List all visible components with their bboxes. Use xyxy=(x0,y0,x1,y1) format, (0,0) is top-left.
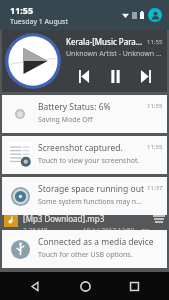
staticText: Screenshot captured. xyxy=(38,142,123,154)
button[interactable]: Battery Status: 6% xyxy=(2,95,167,133)
staticText: Some system functions may not work xyxy=(38,197,144,207)
staticText: Touch to view your screenshot. xyxy=(38,156,140,166)
button[interactable]: Next xyxy=(133,64,157,88)
button[interactable]: Pause xyxy=(103,64,127,88)
staticText: 11:55 xyxy=(147,38,163,46)
button[interactable]: Home xyxy=(70,272,100,300)
staticText: Unknown Artist - Unknown Alb.. xyxy=(66,49,163,59)
button[interactable]: Back xyxy=(20,272,50,300)
staticText: Tuesday 1 August xyxy=(10,17,68,27)
button[interactable]: Storage space running out xyxy=(2,177,167,215)
staticText: 3.36 MB xyxy=(23,226,48,235)
staticText: 11:37 xyxy=(147,184,163,192)
staticText: [Mp3 Download].mp3 xyxy=(23,213,105,224)
staticText: Touch for other USB options. xyxy=(38,250,133,260)
staticText: Kerala-[Music Paradi.. xyxy=(66,36,143,47)
staticText: 10 Jul 2017 12:59 .. ne xyxy=(83,226,150,235)
button[interactable]: User profile xyxy=(148,8,162,22)
button[interactable]: Kerala-[Music Paradi.. xyxy=(2,30,167,92)
button[interactable]: Screenshot captured. xyxy=(2,136,167,174)
button[interactable]: Connected as a media device xyxy=(2,230,167,268)
staticText: 11:55 xyxy=(10,4,34,16)
staticText: Storage space running out xyxy=(38,183,144,195)
button[interactable]: Previous xyxy=(72,64,96,88)
staticText: 11:55 xyxy=(147,102,163,110)
button[interactable]: Recent apps xyxy=(119,272,149,300)
staticText: Saving Mode Off xyxy=(38,115,93,125)
button[interactable]: Billie Holiday Strange fruit-[Mp3 Downlo… xyxy=(4,243,165,264)
button[interactable]: [Mp3 Download].mp3 xyxy=(4,213,165,235)
staticText: 11:55 xyxy=(147,143,163,151)
staticText: Battery Status: 6% xyxy=(38,101,111,113)
staticText: Billie Holiday Strange fruit-[Mp3 Downlo… xyxy=(23,243,145,264)
staticText: Connected as a media device xyxy=(38,236,154,248)
